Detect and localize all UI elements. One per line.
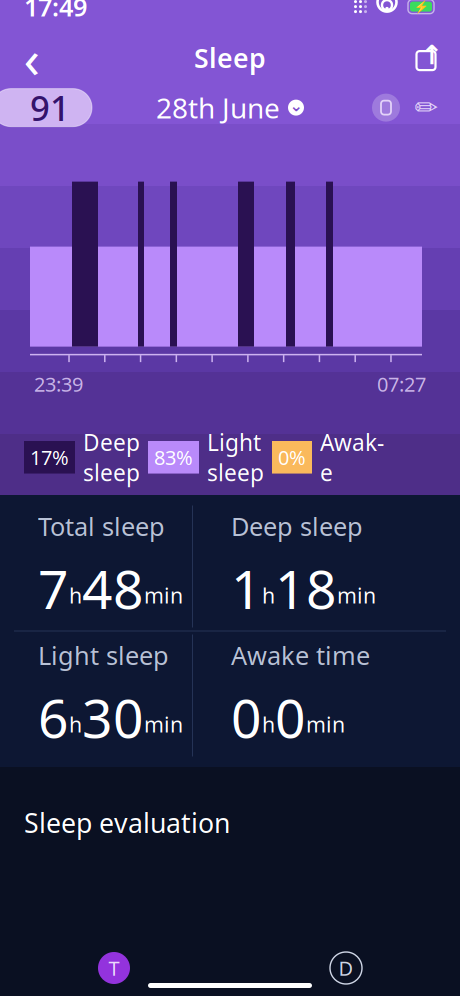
staticText: 07:27 xyxy=(377,371,426,397)
button[interactable]: Sleep score 91 xyxy=(0,89,92,127)
button[interactable]: Watch device xyxy=(366,88,406,128)
button[interactable]: Translate xyxy=(92,946,136,990)
staticText: h xyxy=(262,581,275,609)
staticText: 6 xyxy=(38,682,69,753)
staticText: Sleep xyxy=(194,40,266,75)
staticText: h xyxy=(69,581,82,609)
staticText: 30 xyxy=(82,682,144,753)
staticText: 0 xyxy=(275,682,306,753)
staticText: 17% xyxy=(30,444,69,471)
staticText: 28th June xyxy=(156,89,280,126)
button[interactable]: Edit xyxy=(406,88,446,128)
staticText: 0% xyxy=(278,444,306,471)
staticText: Sleep evaluation xyxy=(24,805,230,840)
staticText: h xyxy=(69,710,82,738)
staticText: Awake time xyxy=(231,638,370,672)
staticText: h xyxy=(262,710,275,738)
staticText: 1 xyxy=(231,553,262,624)
staticText: ⌄ xyxy=(289,96,302,115)
staticText: 18 xyxy=(275,553,337,624)
staticText: Deep sleep xyxy=(231,509,363,543)
staticText: ↑ xyxy=(420,40,442,70)
staticText: min xyxy=(337,581,376,609)
staticText: Light sleep xyxy=(38,638,169,672)
staticText: ✏︎ xyxy=(414,92,437,123)
staticText: D xyxy=(338,955,353,981)
staticText: Light sleep xyxy=(207,427,264,487)
button[interactable]: Back xyxy=(10,36,54,80)
staticText: ‹ xyxy=(23,22,40,93)
staticText: 17:49 xyxy=(24,0,87,23)
staticText: 7 xyxy=(38,553,69,624)
staticText: min xyxy=(144,710,183,738)
button[interactable]: Share xyxy=(406,36,450,80)
staticText: 0 xyxy=(231,682,262,753)
staticText: Awake xyxy=(320,427,384,487)
staticText: min xyxy=(144,581,183,609)
staticText: 83% xyxy=(154,444,193,471)
staticText: 48 xyxy=(82,553,144,624)
staticText: Deep sleep xyxy=(83,427,140,487)
staticText: min xyxy=(306,710,345,738)
staticText: 23:39 xyxy=(34,371,83,397)
staticText: T xyxy=(108,955,119,981)
staticText: Total sleep xyxy=(38,509,165,543)
staticText: ⚡ xyxy=(413,0,428,13)
staticText: 91 xyxy=(30,85,70,131)
button[interactable]: Dictionary xyxy=(324,946,368,990)
button[interactable]: 28th June xyxy=(148,83,312,132)
